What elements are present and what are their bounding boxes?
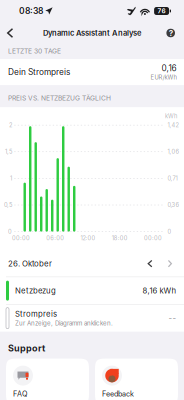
button[interactable]: Back (0, 23, 20, 43)
staticText: 0,71 (167, 175, 177, 182)
staticText: 8,16 kWh (142, 286, 176, 295)
staticText: ? (169, 28, 173, 38)
button[interactable]: Netzbezug (0, 277, 184, 304)
staticText: kWh (165, 113, 177, 120)
button[interactable]: FAQ (6, 359, 89, 400)
staticText: 06:00 (46, 235, 64, 242)
staticText: 18:00 (112, 235, 128, 242)
staticText: 1 (10, 175, 12, 182)
button[interactable]: Help (157, 24, 184, 42)
button[interactable]: Next day (164, 257, 177, 270)
staticText: Netzbezug (15, 286, 56, 295)
staticText: EUR/kWh (150, 74, 176, 81)
staticText: Support (8, 343, 45, 354)
staticText: 0,16 (161, 63, 176, 73)
button[interactable]: Strompreis (0, 305, 184, 332)
staticText: 76 (158, 7, 166, 15)
staticText: Dein Strompreis (8, 67, 70, 77)
staticText: -- (168, 313, 176, 323)
staticText: 1,42 (167, 122, 178, 129)
staticText: LETZTE 30 TAGE (8, 47, 61, 55)
staticText: 26. Oktober (8, 259, 52, 268)
button[interactable]: Dein Strompreis (0, 59, 184, 85)
staticText: 08:38 (19, 6, 43, 16)
staticText: 12:00 (80, 235, 95, 242)
staticText: 0 (167, 228, 171, 235)
staticText: 00:00 (144, 235, 162, 242)
staticText: 1,06 (167, 148, 179, 155)
staticText: 00:00 (12, 235, 30, 242)
staticText: FAQ (13, 390, 28, 398)
staticText: Feedback (102, 390, 134, 398)
staticText: 0 (8, 228, 12, 235)
staticText: Zur Anzeige, Diagramm anklicken. (15, 320, 113, 327)
staticText: 2 (9, 122, 12, 129)
staticText: PREIS VS. NETZBEZUG TÄGLICH (8, 94, 111, 102)
staticText: Strompreis (15, 309, 57, 319)
staticText: 1,5 (5, 148, 12, 155)
button[interactable]: Feedback (95, 359, 178, 400)
staticText: Dynamic Assistant Analyse (43, 28, 141, 38)
staticText: 0,5 (4, 201, 12, 208)
staticText: 0,36 (167, 201, 179, 208)
button[interactable]: Previous day (144, 257, 157, 270)
